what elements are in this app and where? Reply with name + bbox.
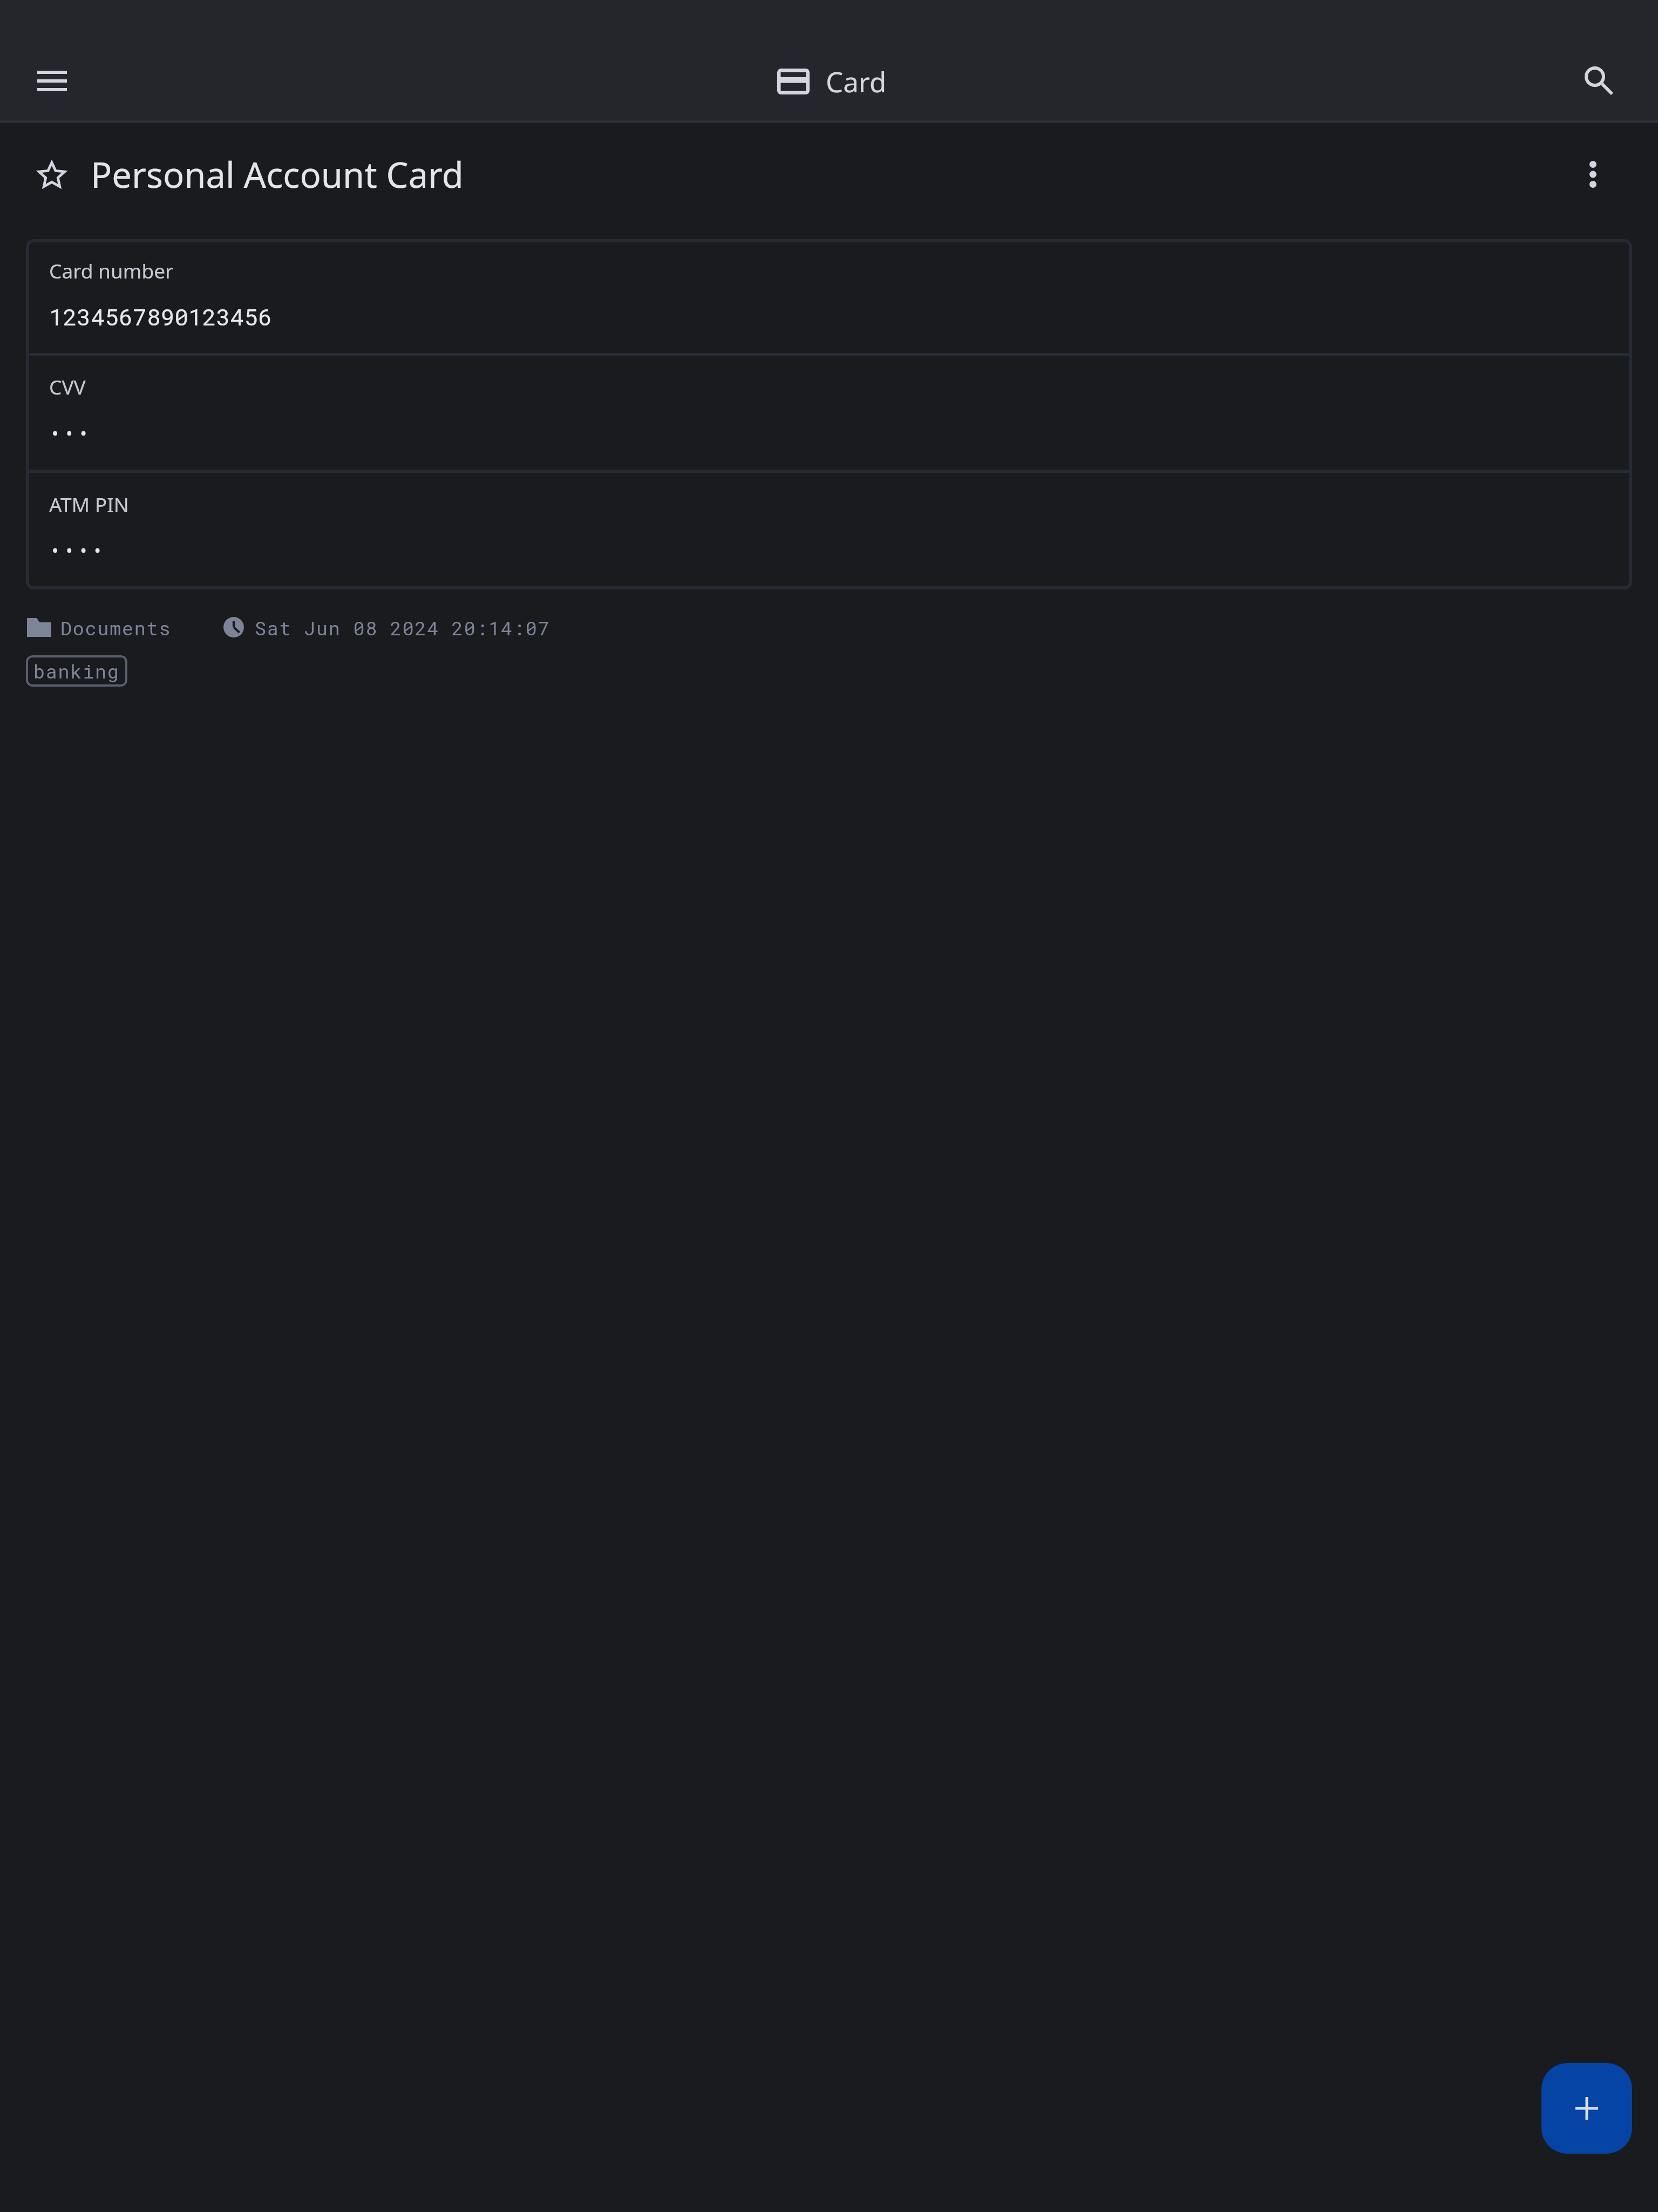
- button[interactable]: banking: [26, 655, 127, 687]
- staticText: CVV: [49, 373, 86, 400]
- button[interactable]: More options: [1568, 150, 1617, 199]
- staticText: ATM PIN: [49, 491, 129, 518]
- staticText: Documents: [60, 615, 172, 639]
- button[interactable]: Favourite: [28, 150, 76, 199]
- staticText: 1234567890123456: [49, 301, 272, 332]
- button[interactable]: ATM PIN: [26, 473, 1632, 589]
- staticText: •••: [49, 420, 92, 446]
- button[interactable]: Add: [1541, 2063, 1632, 2154]
- button[interactable]: CVV: [26, 356, 1632, 470]
- staticText: ••••: [49, 537, 106, 564]
- staticText: Card number: [49, 257, 174, 284]
- staticText: Card: [826, 63, 887, 100]
- button[interactable]: Card number: [26, 239, 1632, 353]
- staticText: Sat Jun 08 2024 20:14:07: [255, 615, 551, 639]
- button[interactable]: Menu: [19, 49, 84, 113]
- staticText: banking: [33, 659, 120, 683]
- staticText: Personal Account Card: [91, 151, 464, 199]
- button[interactable]: Search: [1567, 49, 1632, 113]
